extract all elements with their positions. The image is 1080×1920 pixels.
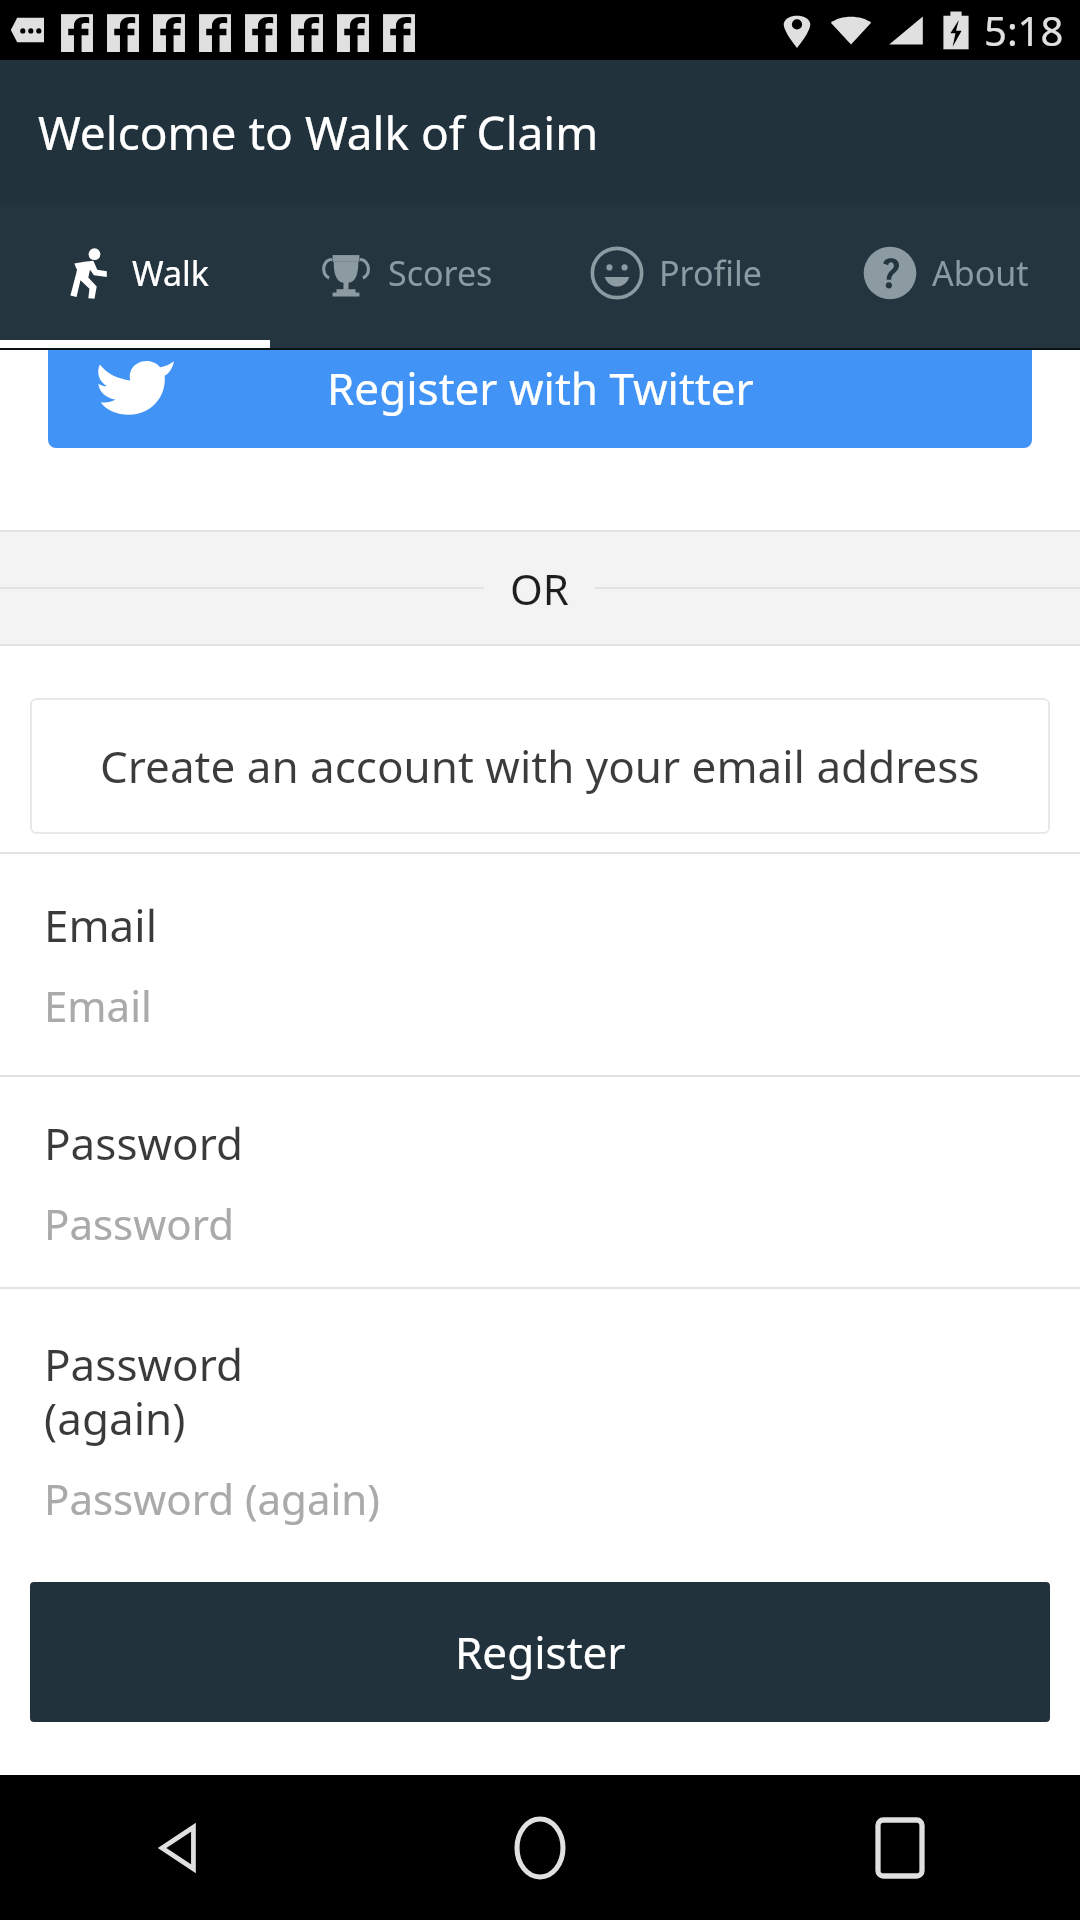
staticText: Scores [388, 250, 493, 296]
staticText: Register with Twitter [327, 358, 754, 418]
button[interactable]: Back [0, 1775, 360, 1920]
button[interactable]: Home [360, 1775, 720, 1920]
staticText: Profile [659, 250, 762, 296]
staticText: Create an account with your email addres… [100, 736, 980, 796]
staticText: Email [44, 977, 152, 1034]
staticText: OR [510, 560, 569, 617]
staticText: Walk [132, 250, 209, 296]
staticText: Register [455, 1622, 626, 1682]
staticText: Welcome to Walk of Claim [38, 101, 599, 164]
staticText: Password [44, 1195, 234, 1252]
staticText: About [932, 250, 1029, 296]
staticText: Email [44, 895, 157, 955]
button[interactable]: Register with Twitter [48, 350, 1032, 448]
button[interactable]: Recent apps [720, 1775, 1080, 1920]
button[interactable]: Profile [540, 205, 810, 340]
staticText: Password (again) [44, 1334, 244, 1448]
button[interactable]: Walk [0, 205, 270, 340]
button[interactable]: Scores [270, 205, 540, 340]
button[interactable]: Create an account with your email addres… [30, 698, 1050, 834]
staticText: Password (again) [44, 1470, 380, 1527]
staticText: Password [44, 1113, 244, 1173]
button[interactable]: About [810, 205, 1080, 340]
button[interactable]: Register [30, 1582, 1050, 1722]
staticText: 5:18 [984, 3, 1064, 57]
